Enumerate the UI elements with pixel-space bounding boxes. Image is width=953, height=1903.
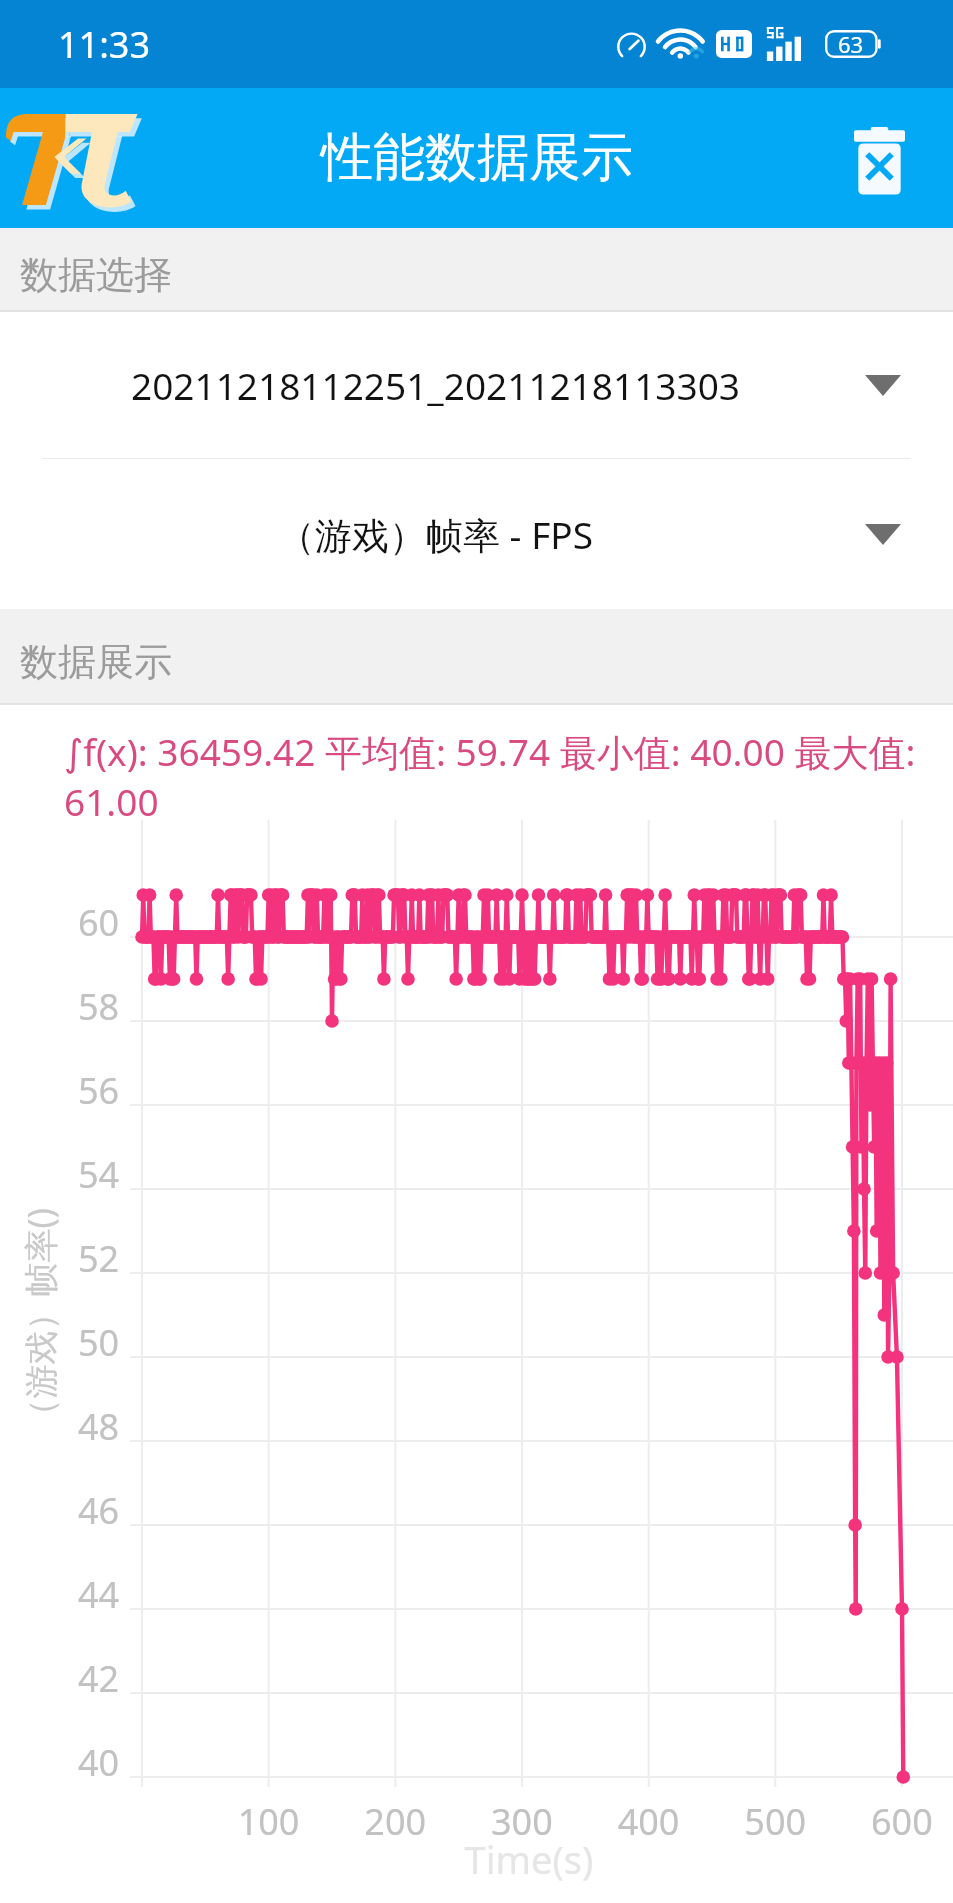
staticText: 20211218112251_20211218113303	[131, 360, 741, 410]
staticText: 11:33	[58, 20, 151, 69]
staticText: 数据选择	[20, 251, 172, 299]
staticText: ∫f(x): 36459.42 平均值: 59.74 最小值: 40.00 最大…	[64, 726, 933, 827]
staticText: （游戏）帧率 - FPS	[278, 509, 594, 560]
button[interactable]: Delete	[839, 118, 919, 198]
button[interactable]: 20211218112251_20211218113303	[0, 312, 953, 458]
button[interactable]: （游戏）帧率 - FPS	[0, 459, 953, 609]
staticText: 63	[838, 29, 864, 59]
staticText: 数据展示	[20, 638, 172, 686]
staticText: 性能数据展示	[321, 125, 633, 191]
